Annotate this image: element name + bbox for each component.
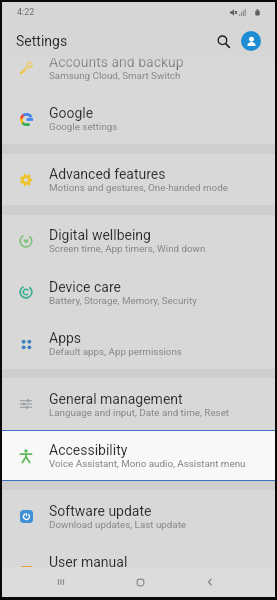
button[interactable]: Accessibility xyxy=(2,430,275,481)
button[interactable]: Apps xyxy=(2,318,275,369)
staticText: Screen time, App timers, Wind down xyxy=(49,243,206,254)
staticText: Download updates, Last update xyxy=(49,519,187,530)
staticText: Language and input, Date and time, Reset xyxy=(49,407,230,418)
button[interactable]: Advanced features xyxy=(2,154,275,205)
button[interactable]: Google xyxy=(2,93,275,144)
staticText: Motions and gestures, One-handed mode xyxy=(49,182,228,193)
button[interactable]: Back xyxy=(197,569,223,595)
staticText: Google xyxy=(49,105,94,121)
button[interactable]: Software update xyxy=(2,490,275,542)
staticText: Google settings xyxy=(49,121,118,132)
button[interactable]: Accounts and backup xyxy=(2,58,275,93)
button[interactable]: General management xyxy=(2,378,275,430)
staticText: Accounts and backup xyxy=(49,58,184,70)
button[interactable]: Device care xyxy=(2,266,275,318)
staticText: Device care xyxy=(49,279,121,295)
staticText: Apps xyxy=(49,330,82,346)
staticText: User manual xyxy=(49,554,128,567)
button[interactable]: User manual xyxy=(2,542,275,567)
button[interactable]: Account xyxy=(238,28,264,54)
staticText: Battery, Storage, Memory, Security xyxy=(49,295,197,306)
staticText: Software update xyxy=(49,503,152,519)
button[interactable]: Search xyxy=(210,28,236,54)
staticText: Samsung Cloud, Smart Switch xyxy=(49,70,181,81)
staticText: General management xyxy=(49,391,183,407)
button[interactable]: Digital wellbeing xyxy=(2,215,275,266)
staticText: Default apps, App permissions xyxy=(49,346,182,357)
staticText: Settings xyxy=(16,33,68,49)
staticText: Voice Assistant, Mono audio, Assistant m… xyxy=(49,458,246,469)
button[interactable]: Recent apps xyxy=(48,569,74,595)
staticText: Digital wellbeing xyxy=(49,227,151,243)
button[interactable]: Home xyxy=(127,569,153,595)
staticText: 4:22 xyxy=(17,7,35,18)
staticText: Advanced features xyxy=(49,166,166,182)
staticText: Accessibility xyxy=(49,442,128,458)
